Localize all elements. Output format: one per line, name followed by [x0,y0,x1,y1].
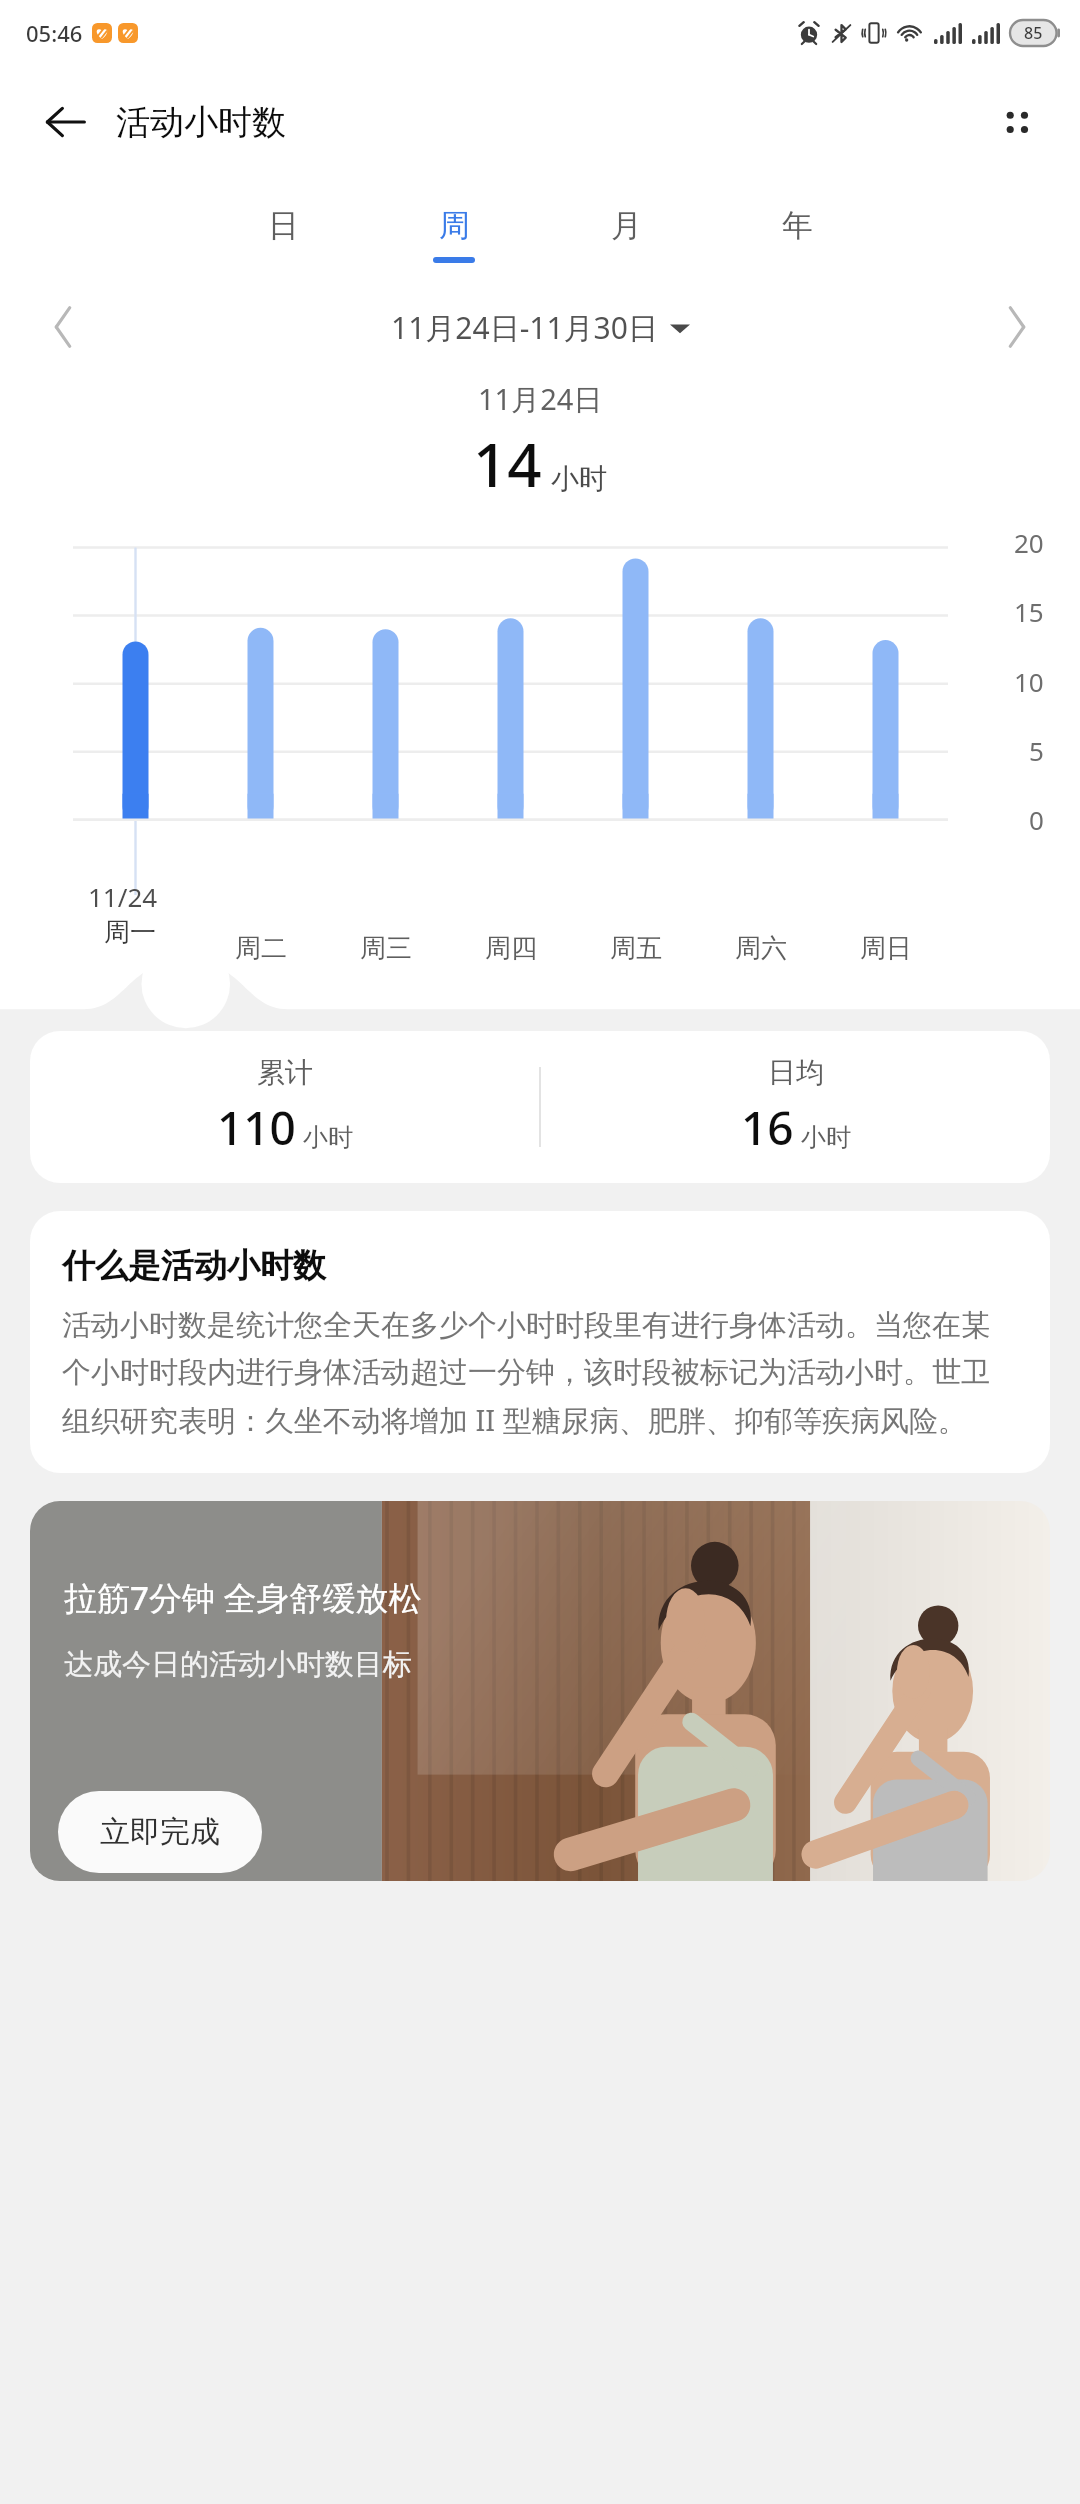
button[interactable]: 什么是活动小时数 [30,1211,1050,1473]
button[interactable]: 更多选项 [978,83,1056,161]
staticText: 周六 [735,932,787,965]
staticText: 周三 [360,932,412,965]
button[interactable]: 月 [591,204,661,265]
staticText: 什么是活动小时数 [62,1245,326,1287]
staticText: 5 [1029,733,1044,768]
staticText: 11月24日 [478,379,603,419]
staticText: 05:46 [26,18,83,48]
staticText: 110 [217,1096,296,1159]
button[interactable]: 日 [248,204,318,265]
staticText: 日均 [768,1055,824,1090]
staticText: 周一 [104,916,156,949]
staticText: 11月24日-11月30日 [391,307,658,348]
staticText: 85 [1024,22,1043,44]
staticText: 11/24 [88,879,158,914]
staticText: 16 [741,1096,794,1159]
staticText: 小时 [303,1122,353,1153]
staticText: 日 [268,206,299,245]
button[interactable]: 累计 [30,1031,1050,1183]
staticText: 活动小时数是统计您全天在多少个小时时段里有进行身体活动。当您在某个小时时段内进行… [62,1307,1018,1439]
staticText: 年 [782,206,813,245]
button[interactable]: 下一周 [980,290,1054,364]
staticText: 活动小时数 [116,101,286,144]
staticText: 周五 [610,932,662,965]
staticText: 15 [1014,594,1044,629]
staticText: 10 [1014,664,1044,699]
staticText: 周二 [235,932,287,965]
button[interactable]: 立即完成 [58,1791,262,1873]
button[interactable]: 返回 [26,83,104,161]
staticText: 0 [1029,802,1044,837]
staticText: 周 [439,206,470,245]
staticText: 月 [611,206,642,245]
staticText: 周日 [860,932,912,965]
button[interactable]: 周 [419,204,489,265]
button[interactable]: 上一周 [26,290,100,364]
staticText: 达成今日的活动小时数目标 [64,1646,412,1683]
button[interactable]: 年 [762,204,832,265]
button[interactable]: 拉筋7分钟 全身舒缓放松 [30,1501,1050,1881]
staticText: 14 [473,423,542,505]
staticText: 小时 [801,1122,851,1153]
staticText: 周四 [485,932,537,965]
staticText: 小时 [551,461,607,496]
staticText: 拉筋7分钟 全身舒缓放松 [64,1575,422,1620]
staticText: 20 [1014,525,1044,560]
button[interactable]: 11月24日-11月30日 [379,301,702,354]
staticText: 累计 [257,1055,313,1090]
staticText: 立即完成 [100,1813,220,1851]
